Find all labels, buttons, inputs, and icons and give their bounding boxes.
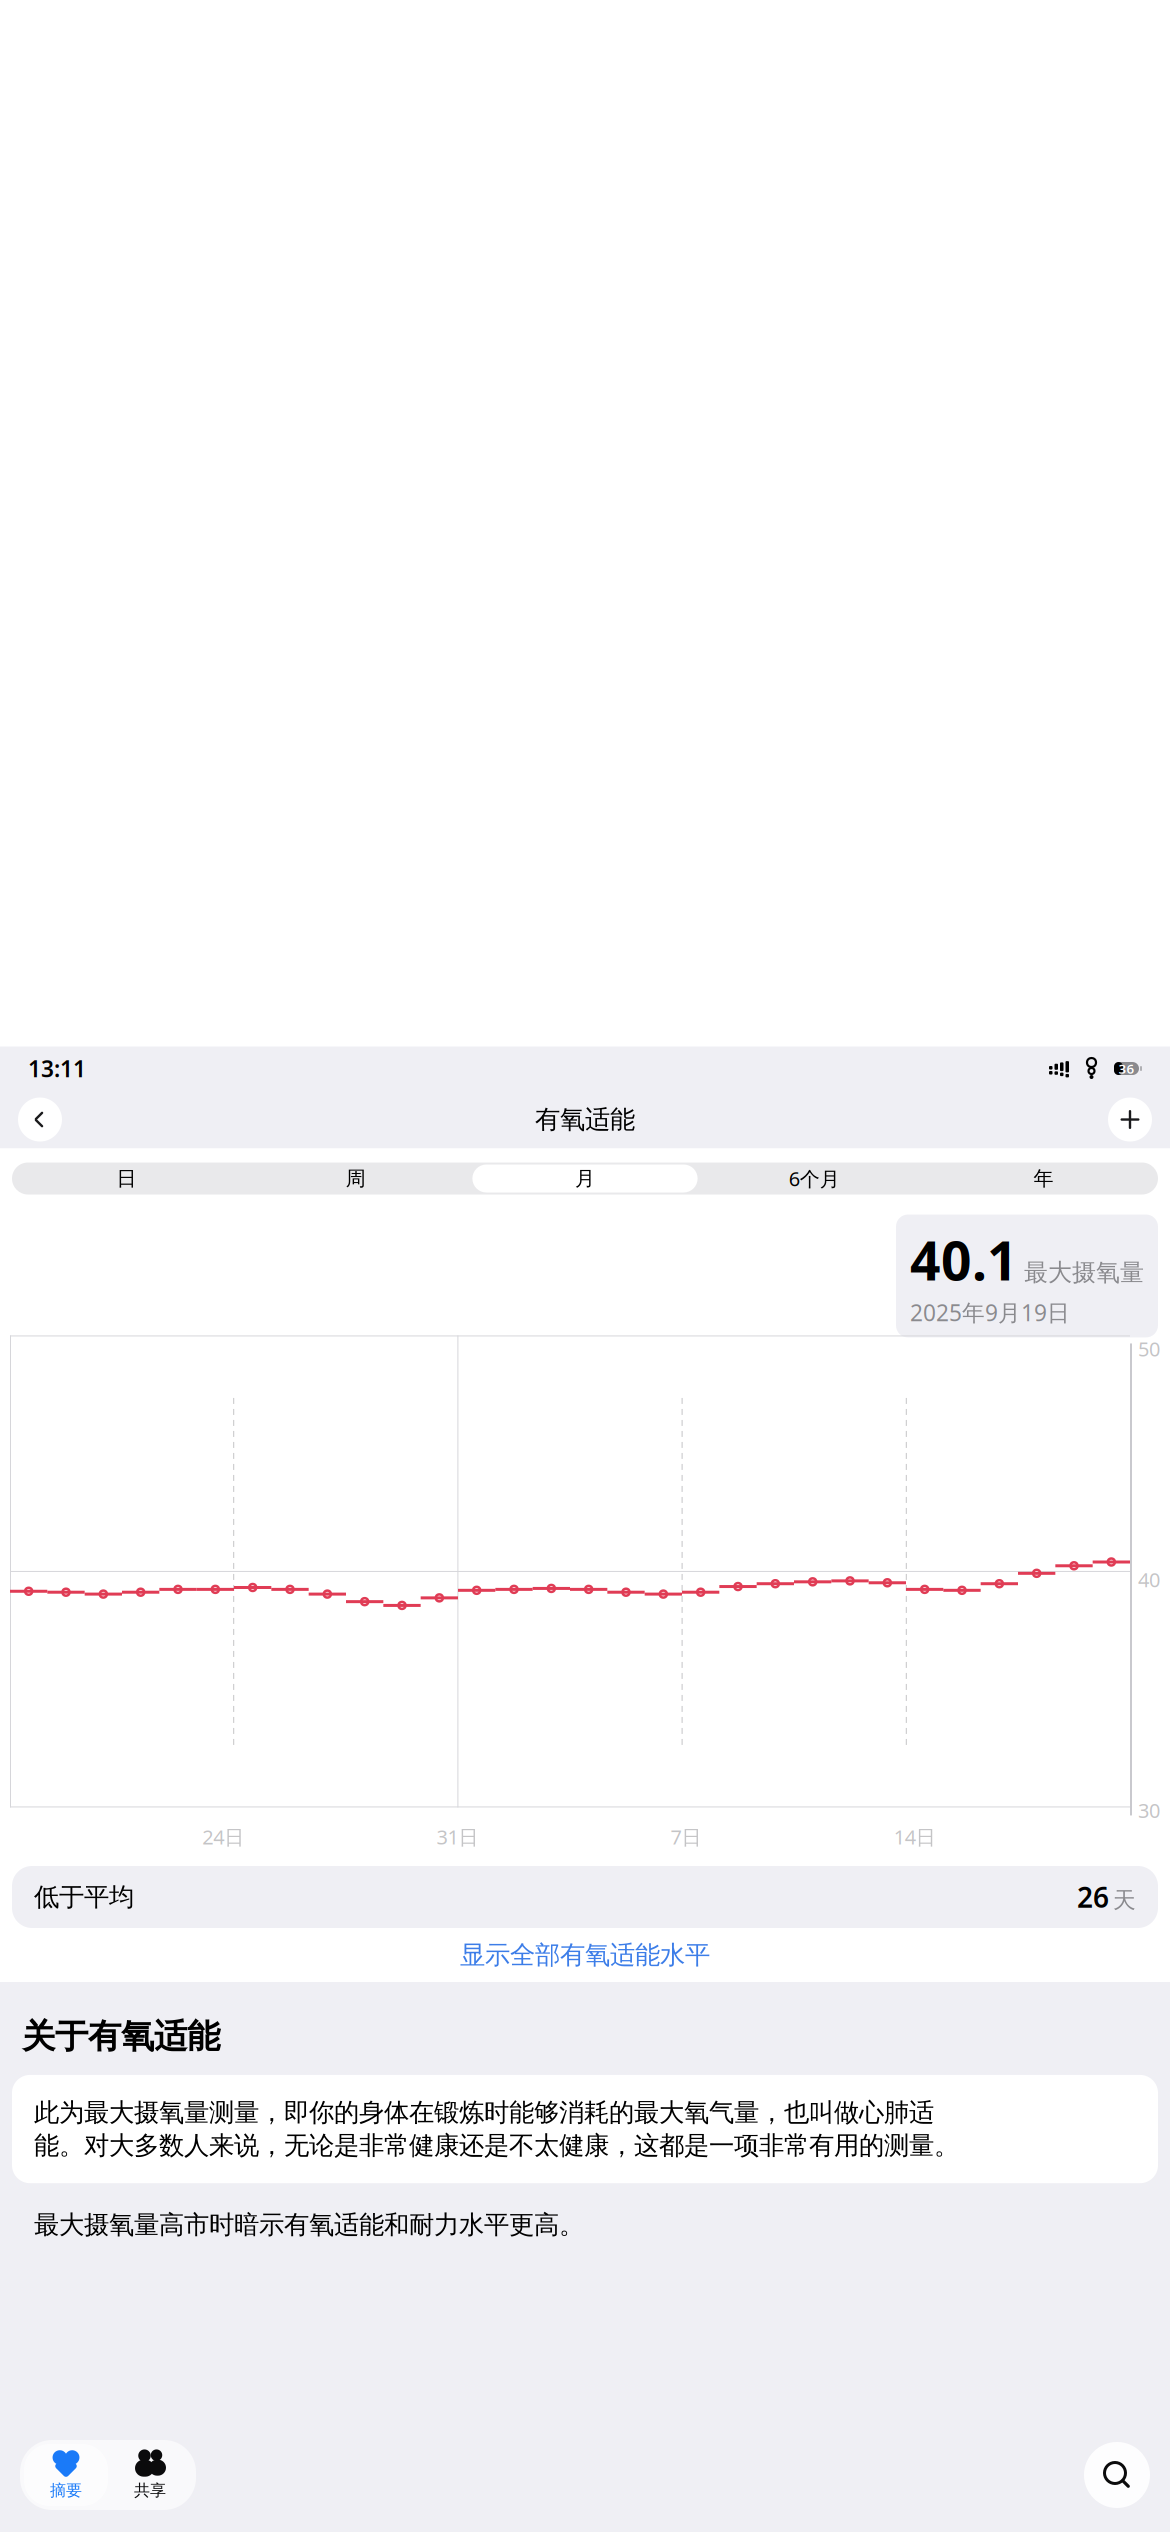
button[interactable]: 月 [470,1162,700,1194]
staticText: 此为最大摄氧量测量，即你的身体在锻炼时能够消耗的最大氧气量，也叫做心肺适 [34,2097,934,2128]
staticText: 摘要 [50,2481,82,2500]
staticText: 显示全部有氧适能水平 [460,1939,710,1970]
button[interactable]: 共享 [108,2444,192,2506]
button[interactable]: 日 [12,1162,241,1194]
button[interactable]: 低于平均 [12,1866,1158,1928]
staticText: 能。对大多数人来说，无论是非常健康还是不太健康，这都是一项非常有用的测量。 [34,2130,959,2161]
staticText: 14日 [894,1823,936,1850]
staticText: 36 [1118,1060,1134,1077]
staticText: 24日 [202,1823,244,1850]
staticText: 40.1 [910,1224,1018,1295]
staticText: 31日 [436,1823,478,1850]
staticText: 年 [1033,1166,1053,1191]
button[interactable]: 年 [929,1162,1158,1194]
button[interactable]: 6个月 [700,1162,929,1194]
button[interactable]: 搜索 [1084,2442,1150,2508]
staticText: 共享 [134,2481,166,2500]
staticText: 13:11 [28,1053,86,1084]
staticText: 低于平均 [34,1881,134,1912]
staticText: 40 [1138,1566,1160,1593]
staticText: 天 [1113,1886,1136,1914]
button[interactable]: 返回 [18,1097,62,1141]
staticText: 6个月 [789,1165,840,1192]
staticText: 周 [346,1166,366,1191]
staticText: 30 [1138,1797,1160,1823]
button[interactable]: 添加数据 [1108,1097,1152,1141]
staticText: 最大摄氧量 [1024,1258,1144,1287]
staticText: 月 [575,1166,595,1191]
staticText: 有氧适能 [535,1104,635,1135]
button[interactable]: 摘要 [24,2444,108,2506]
button[interactable]: 周 [241,1162,470,1194]
staticText: 2025年9月19日 [910,1297,1070,1327]
staticText: 7日 [671,1823,702,1850]
button[interactable]: 显示全部有氧适能水平 [0,1928,1170,1982]
staticText: 关于有氧适能 [22,2016,220,2057]
staticText: 26 [1077,1878,1109,1916]
staticText: 50 [1138,1335,1160,1362]
staticText: 日 [117,1166,137,1191]
staticText: 最大摄氧量高市时暗示有氧适能和耐力水平更高。 [34,2209,584,2240]
